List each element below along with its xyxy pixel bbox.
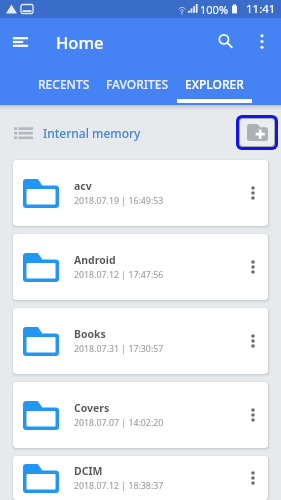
- button[interactable]: More options: [240, 321, 266, 361]
- staticText: 2018.07.31 | 17:30:57: [74, 343, 164, 355]
- staticText: Internal memory: [43, 125, 141, 141]
- button[interactable]: Books: [13, 308, 268, 374]
- staticText: Android: [74, 253, 116, 267]
- staticText: 2018.07.07 | 14:02:20: [74, 417, 164, 429]
- button[interactable]: EXPLORER: [177, 65, 252, 105]
- button[interactable]: acv: [13, 160, 268, 226]
- button[interactable]: FAVORITES: [98, 65, 177, 105]
- staticText: FAVORITES: [106, 76, 169, 92]
- button[interactable]: More options: [240, 395, 266, 435]
- staticText: 2018.07.19 | 16:49:53: [74, 195, 164, 207]
- staticText: Home: [56, 31, 104, 53]
- staticText: acv: [74, 179, 92, 193]
- button[interactable]: Android: [13, 234, 268, 300]
- button[interactable]: Covers: [13, 382, 268, 448]
- button[interactable]: DCIM: [13, 456, 268, 500]
- button[interactable]: New folder: [240, 119, 274, 146]
- staticText: EXPLORER: [185, 76, 244, 92]
- staticText: RECENTS: [38, 76, 90, 92]
- staticText: Covers: [74, 401, 110, 415]
- button[interactable]: More options: [246, 18, 278, 65]
- staticText: Books: [74, 327, 106, 341]
- button[interactable]: Search: [206, 18, 246, 65]
- staticText: 11:41: [246, 1, 276, 17]
- button[interactable]: RECENTS: [30, 65, 98, 105]
- button[interactable]: More options: [240, 458, 266, 498]
- button[interactable]: Menu: [0, 18, 40, 65]
- button[interactable]: More options: [240, 173, 266, 213]
- button[interactable]: More options: [240, 247, 266, 287]
- staticText: DCIM: [74, 464, 103, 478]
- staticText: 2018.07.12 | 18:38:37: [74, 480, 164, 492]
- staticText: 100%: [200, 2, 229, 17]
- staticText: 2018.07.12 | 17:47:56: [74, 269, 164, 281]
